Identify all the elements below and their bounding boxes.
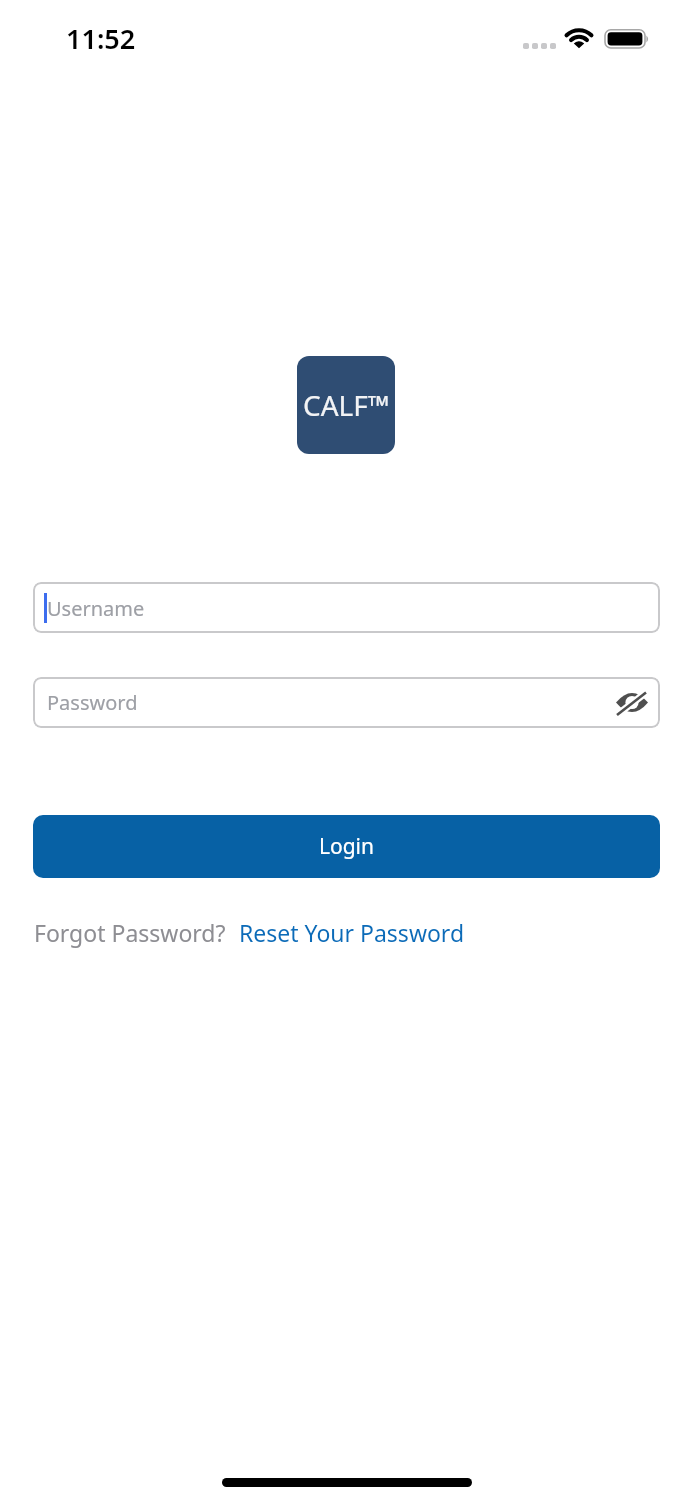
- staticText: Forgot Password?: [34, 917, 226, 948]
- button[interactable]: Password: [33, 677, 660, 728]
- button[interactable]: Login: [33, 815, 660, 878]
- staticText: 11:52: [66, 20, 136, 57]
- button[interactable]: Reset Your Password: [239, 917, 465, 948]
- staticText: Password: [47, 689, 138, 716]
- staticText: Username: [47, 595, 145, 622]
- staticText: Login: [319, 832, 375, 861]
- staticText: CALF™: [303, 386, 390, 424]
- button[interactable]: Username: [33, 582, 660, 633]
- button[interactable]: CALF™: [297, 356, 395, 454]
- staticText: Reset Your Password: [239, 917, 465, 948]
